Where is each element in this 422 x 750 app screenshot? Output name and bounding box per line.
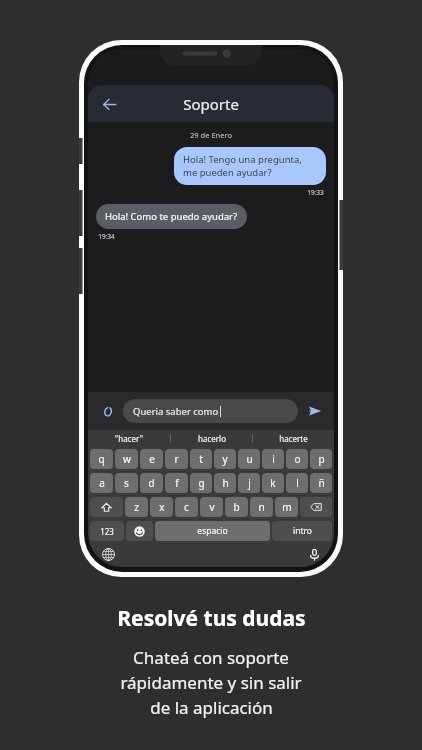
button[interactable]: Attach file (96, 400, 118, 422)
button[interactable]: Back (94, 89, 124, 119)
button[interactable]: j (238, 473, 260, 493)
staticText: u (246, 452, 253, 466)
staticText: w (123, 452, 131, 466)
staticText: espacio (197, 525, 228, 537)
button[interactable]: h (214, 473, 236, 493)
button[interactable]: b (225, 497, 248, 517)
button[interactable]: s (115, 473, 138, 493)
staticText: e (149, 452, 155, 466)
staticText: 123 (100, 526, 114, 537)
button[interactable]: q (90, 449, 113, 469)
button[interactable]: Emoji (126, 521, 153, 541)
button[interactable]: k (262, 473, 284, 493)
staticText: i (272, 452, 275, 466)
button[interactable]: hacerlo (171, 430, 252, 447)
staticText: ñ (318, 476, 325, 490)
staticText: Queria saber como (133, 405, 219, 418)
button[interactable]: r (165, 449, 188, 469)
button[interactable]: Send (304, 400, 326, 422)
staticText: p (318, 452, 325, 466)
staticText: Hola! Tengo una pregunta, me pueden ayud… (183, 153, 317, 179)
button[interactable]: n (250, 497, 273, 517)
button[interactable]: e (140, 449, 163, 469)
staticText: k (270, 476, 276, 490)
button[interactable]: u (238, 449, 260, 469)
button[interactable]: "hacer" (88, 430, 170, 447)
button[interactable]: v (200, 497, 223, 517)
staticText: Chateá con soporte (133, 646, 289, 669)
button[interactable]: espacio (155, 521, 270, 541)
button[interactable]: c (175, 497, 198, 517)
button[interactable]: t (190, 449, 212, 469)
staticText: de la aplicación (150, 696, 273, 719)
button[interactable]: y (214, 449, 236, 469)
staticText: x (159, 500, 165, 514)
button[interactable]: f (165, 473, 188, 493)
button[interactable]: Queria saber como (123, 399, 298, 423)
staticText: m (282, 500, 292, 514)
staticText: 29 de Enero (190, 130, 232, 140)
staticText: Soporte (183, 94, 239, 114)
button[interactable]: hacerte (253, 430, 334, 447)
staticText: a (99, 476, 105, 490)
staticText: z (134, 500, 139, 514)
staticText: l (296, 476, 299, 490)
staticText: d (148, 476, 155, 490)
staticText: 19:34 (98, 232, 115, 241)
staticText: intro (293, 525, 312, 537)
button[interactable]: i (262, 449, 284, 469)
staticText: Hola! Como te puedo ayudar? (105, 210, 238, 223)
button[interactable]: d (140, 473, 163, 493)
button[interactable]: 123 (90, 521, 124, 541)
staticText: t (199, 452, 203, 466)
button[interactable]: Change language (98, 544, 118, 564)
button[interactable]: ñ (310, 473, 332, 493)
button[interactable]: g (190, 473, 212, 493)
button[interactable]: Hola! Tengo una pregunta, me pueden ayud… (174, 147, 326, 185)
button[interactable]: l (286, 473, 308, 493)
button[interactable]: a (90, 473, 113, 493)
button[interactable]: m (275, 497, 298, 517)
button[interactable]: Voice input (304, 544, 324, 564)
staticText: 19:33 (307, 188, 324, 197)
button[interactable]: z (125, 497, 148, 517)
button[interactable]: intro (272, 521, 332, 541)
staticText: g (198, 476, 205, 490)
staticText: b (233, 500, 240, 514)
staticText: v (209, 500, 215, 514)
button[interactable]: o (286, 449, 308, 469)
staticText: n (258, 500, 265, 514)
staticText: hacerlo (198, 433, 226, 444)
button[interactable]: x (150, 497, 173, 517)
button[interactable]: Shift (90, 497, 123, 517)
staticText: q (98, 452, 105, 466)
button[interactable]: p (310, 449, 332, 469)
staticText: rápidamente y sin salir (120, 671, 302, 694)
staticText: r (174, 452, 179, 466)
staticText: j (248, 476, 251, 490)
staticText: hacerte (279, 433, 308, 444)
staticText: y (222, 452, 228, 466)
button[interactable]: Hola! Como te puedo ayudar? (96, 204, 247, 229)
button[interactable]: Backspace (300, 497, 332, 517)
staticText: Resolvé tus dudas (117, 604, 306, 633)
button[interactable]: w (115, 449, 138, 469)
staticText: h (222, 476, 229, 490)
staticText: "hacer" (115, 433, 143, 444)
staticText: f (175, 476, 179, 490)
staticText: s (124, 476, 129, 490)
staticText: c (184, 500, 189, 514)
staticText: o (294, 452, 301, 466)
